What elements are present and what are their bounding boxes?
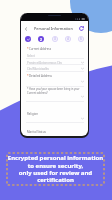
staticText: 4: [67, 37, 69, 41]
staticText: Encrypted personal information to ensure…: [7, 154, 104, 184]
staticText: 3: [54, 37, 56, 41]
staticText: *: [27, 47, 29, 51]
staticText: Detailed Address: [29, 74, 52, 78]
button[interactable]: Step 1: [25, 36, 31, 42]
staticText: * Have you/your spouse been living in yo…: [27, 87, 83, 95]
button[interactable]: Select option: [27, 80, 84, 83]
staticText: 5: [80, 37, 82, 41]
button[interactable]: Province/Autonomous City: [27, 61, 84, 64]
button[interactable]: Select option: [27, 117, 84, 120]
staticText: Select: [27, 54, 35, 57]
staticText: Current Address: [29, 47, 52, 51]
staticText: City/Municipality: [27, 67, 49, 70]
staticText: Province/Autonomous City: [27, 61, 62, 64]
button[interactable]: Back: [21, 23, 30, 34]
button[interactable]: Step 4: [65, 36, 71, 42]
staticText: Marital Status: [27, 130, 46, 134]
staticText: Personal Information: [34, 26, 73, 31]
button[interactable]: City/Municipality: [27, 67, 84, 70]
staticText: *: [27, 74, 29, 78]
button[interactable]: Step 3: [52, 36, 58, 42]
button[interactable]: History: [76, 23, 87, 34]
button[interactable]: Step 5: [78, 36, 84, 42]
button[interactable]: Step 2: [38, 36, 44, 42]
button[interactable]: Select option: [27, 95, 84, 98]
staticText: 2: [40, 37, 42, 42]
staticText: Religion: [27, 112, 38, 116]
button[interactable]: Select: [27, 54, 84, 57]
